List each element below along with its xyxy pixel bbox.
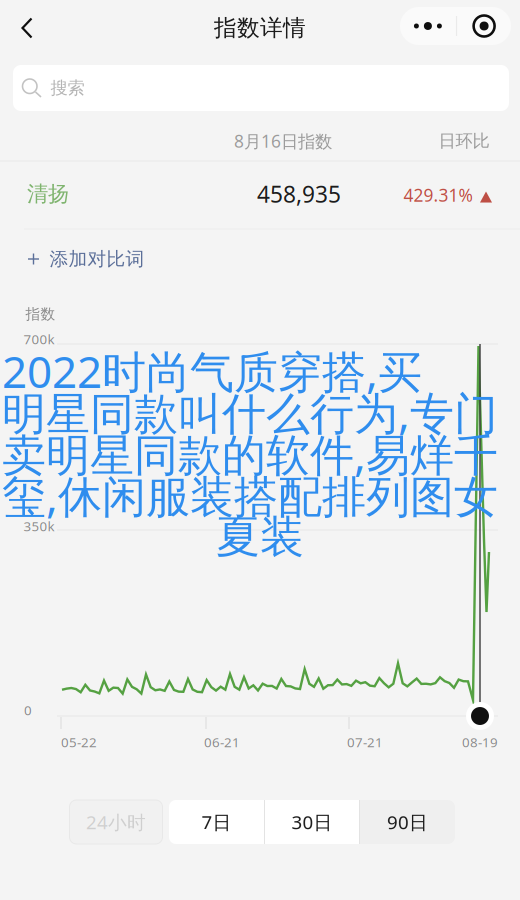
staticText: 0	[24, 701, 32, 719]
staticText: 30日	[291, 810, 332, 834]
staticText: 清扬	[27, 181, 69, 207]
button[interactable]: 24小时	[69, 800, 162, 844]
staticText: 2022时尚气质穿搭,买	[2, 342, 422, 400]
staticText: 8月16日指数	[234, 129, 332, 152]
staticText: 700k	[23, 330, 54, 348]
staticText: 玺,休闲服装搭配排列图女	[2, 466, 498, 525]
staticText: 明星同款叫什么行为,专门	[2, 383, 498, 442]
staticText: 05-22	[61, 733, 97, 751]
staticText: 指数	[25, 305, 55, 323]
staticText: 24小时	[86, 810, 146, 834]
staticText: 夏装	[216, 510, 304, 564]
staticText: 458,935	[257, 179, 341, 209]
staticText: 卖明星同款的软件,易烊千	[2, 425, 498, 483]
staticText: 06-21	[204, 733, 240, 751]
staticText: 添加对比词	[49, 247, 144, 270]
staticText: 日环比	[438, 130, 489, 152]
staticText: 90日	[387, 810, 428, 834]
button[interactable]: 搜索	[13, 65, 509, 111]
button[interactable]: 返回	[5, 6, 49, 50]
staticText: 搜索	[50, 77, 84, 99]
button[interactable]: 7日	[169, 800, 264, 844]
staticText: 350k	[23, 517, 54, 535]
staticText: 07-21	[347, 733, 383, 751]
staticText: 08-19	[462, 733, 498, 751]
staticText: 指数详情	[214, 14, 306, 42]
button[interactable]: 添加对比词	[0, 231, 520, 287]
button[interactable]: 90日	[360, 800, 455, 844]
button[interactable]: 30日	[265, 800, 359, 844]
button[interactable]: 更多	[400, 7, 511, 45]
staticText: 429.31%	[403, 183, 472, 206]
staticText: 7日	[201, 810, 231, 834]
